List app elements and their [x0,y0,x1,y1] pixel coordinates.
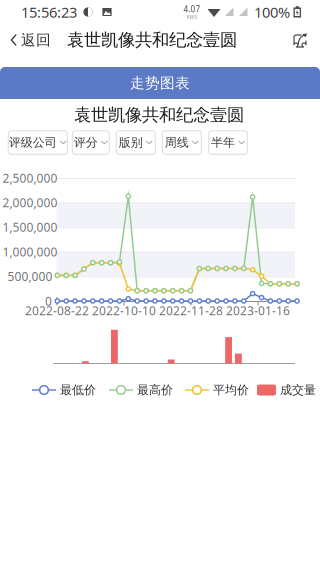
button[interactable]: 成交量 [257,382,316,398]
staticText: 100% [254,2,290,22]
staticText: 1,500,000 [2,219,57,235]
button[interactable]: 平均价 [185,382,249,398]
button[interactable]: 评分 [72,131,109,154]
staticText: 袁世凯像共和纪念壹圆 [74,104,244,126]
staticText: 走势图表 [130,74,190,92]
staticText: 成交量 [280,383,316,397]
staticText: 2023-01-16 [226,302,290,318]
staticText: 2,000,000 [2,195,57,210]
staticText: 15:56:23 [21,2,77,22]
button[interactable]: 评级公司 [8,131,67,154]
staticText: 评级公司 [9,135,57,150]
staticText: 4.07 [183,4,200,14]
staticText: 评分 [74,135,98,150]
staticText: KB/S [186,13,197,20]
staticText: 2022-10-10 [92,302,156,318]
staticText: 500,000 [7,268,52,284]
staticText: 2,500,000 [2,170,57,186]
staticText: 1,000,000 [2,244,57,260]
staticText: 最高价 [137,383,173,397]
button[interactable]: 版别 [116,131,155,154]
staticText: 半年 [211,135,235,150]
staticText: 袁世凯像共和纪念壹圆 [67,29,237,51]
button[interactable]: 走势图表 [0,67,320,99]
button[interactable]: 周线 [162,131,201,154]
staticText: 2022-11-28 [159,302,223,318]
staticText: 版别 [119,135,143,150]
button[interactable]: 最高价 [109,382,173,398]
button[interactable]: 返回 [3,24,58,56]
staticText: 周线 [165,135,189,150]
staticText: 2022-08-22 [25,302,89,318]
staticText: 平均价 [213,383,249,397]
staticText: 最低价 [60,383,96,397]
button[interactable]: 最低价 [32,382,96,398]
button[interactable]: 半年 [209,131,247,154]
staticText: 0 [45,293,52,309]
button[interactable]: 分享 [283,24,317,56]
staticText: 返回 [21,31,51,49]
